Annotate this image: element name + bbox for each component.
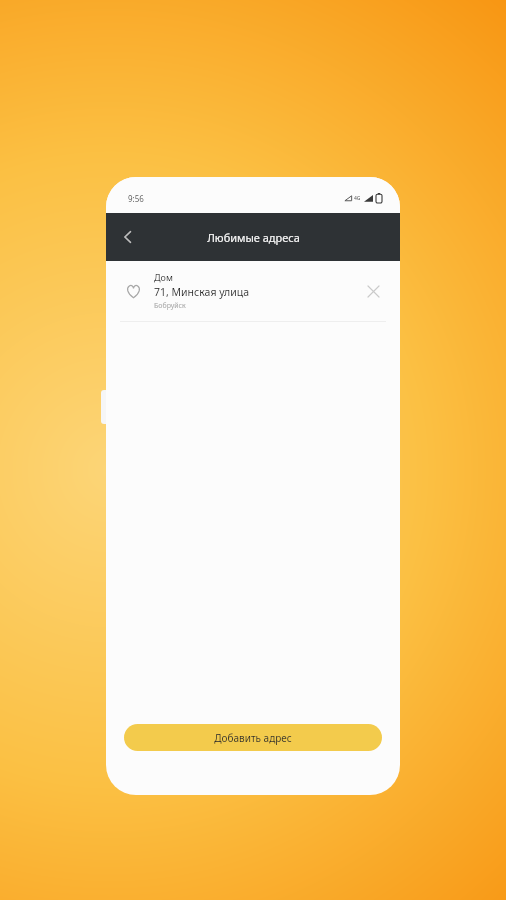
button[interactable]: Back — [106, 215, 150, 259]
button[interactable]: Favorite — [106, 261, 400, 322]
button[interactable]: Добавить адрес — [124, 724, 382, 751]
staticText: Бобруйск — [154, 301, 186, 311]
other: Favorite — [120, 278, 146, 304]
staticText: Добавить адрес — [214, 731, 292, 745]
staticText: 9:56 — [128, 193, 144, 204]
button[interactable]: Remove address — [360, 278, 386, 304]
staticText: 71, Минская улица — [154, 285, 249, 299]
staticText: 4G — [354, 195, 361, 202]
staticText: Любимые адреса — [207, 230, 300, 245]
staticText: Дом — [154, 271, 173, 283]
